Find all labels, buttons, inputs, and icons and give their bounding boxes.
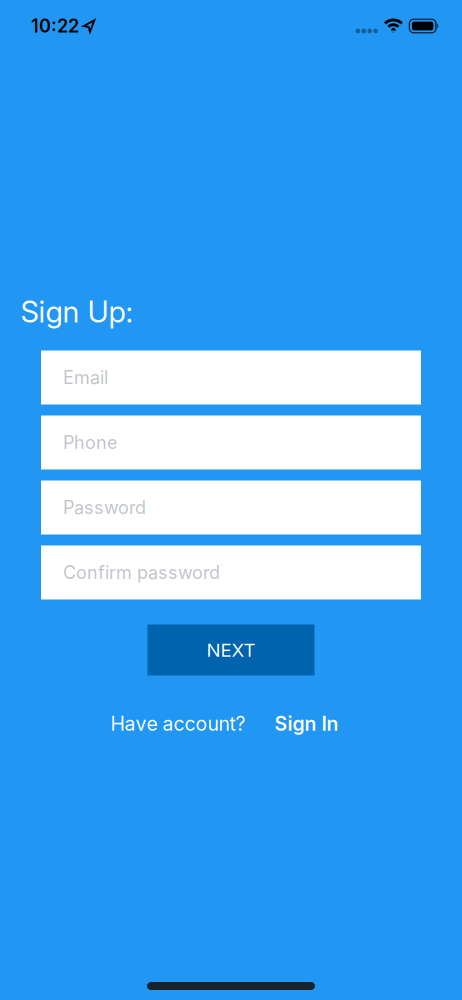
staticText: Confirm password: [63, 562, 220, 583]
staticText: Password: [63, 497, 146, 518]
staticText: 10:22: [31, 15, 79, 37]
staticText: Have account?: [110, 712, 245, 736]
button[interactable]: Phone: [41, 415, 421, 469]
staticText: Sign In: [274, 712, 338, 736]
staticText: Sign Up:: [20, 294, 133, 329]
staticText: Phone: [63, 432, 117, 453]
staticText: NEXT: [206, 639, 255, 661]
button[interactable]: Sign In: [274, 712, 338, 736]
staticText: Email: [63, 367, 108, 388]
button[interactable]: Confirm password: [41, 545, 421, 599]
button[interactable]: Email: [41, 350, 421, 404]
button[interactable]: Password: [41, 480, 421, 534]
button[interactable]: NEXT: [147, 624, 314, 675]
